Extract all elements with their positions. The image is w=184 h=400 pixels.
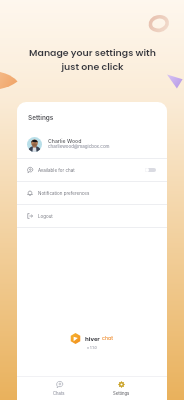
staticText: Manage your settings with just one click bbox=[29, 46, 156, 73]
button[interactable]: Settings bbox=[108, 379, 135, 398]
staticText: charliewood@magicbox.com bbox=[48, 144, 110, 149]
staticText: v 1.1.0 bbox=[87, 346, 97, 350]
staticText: hiver bbox=[85, 335, 100, 343]
staticText: Chats bbox=[53, 391, 65, 396]
button[interactable]: Logout bbox=[17, 205, 167, 227]
staticText: chat bbox=[102, 335, 114, 342]
staticText: Logout bbox=[38, 214, 53, 219]
staticText: Notification preferences bbox=[38, 191, 90, 196]
staticText: Charlie Wood bbox=[48, 138, 82, 144]
button[interactable]: Chats bbox=[48, 379, 70, 398]
staticText: Available for chat bbox=[38, 168, 75, 173]
button[interactable]: Available for chat bbox=[17, 159, 167, 181]
staticText: Settings bbox=[113, 391, 130, 396]
button[interactable]: Notification preferences bbox=[17, 182, 167, 204]
staticText: Settings bbox=[28, 114, 54, 122]
button[interactable]: Charlie Wood bbox=[17, 130, 167, 158]
